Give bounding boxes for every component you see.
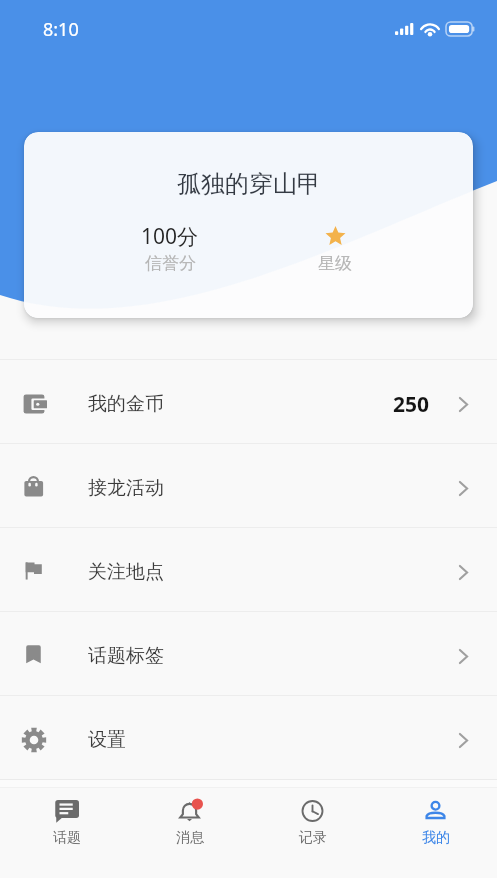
staticText: 孤独的穿山甲 [177, 169, 321, 199]
button[interactable]: 设置 [0, 696, 497, 779]
button[interactable]: 消息 [128, 788, 251, 847]
button[interactable]: 关注地点 [0, 528, 497, 611]
staticText: 我的 [422, 829, 450, 847]
staticText: 250 [393, 390, 430, 419]
button[interactable]: 记录 [251, 788, 374, 847]
button[interactable]: 话题标签 [0, 612, 497, 695]
staticText: 消息 [176, 829, 204, 847]
staticText: 100分 [141, 222, 199, 251]
staticText: 8:10 [43, 17, 79, 42]
button[interactable]: 我的 [374, 788, 497, 847]
staticText: 话题标签 [88, 644, 164, 668]
staticText: 接龙活动 [88, 476, 164, 500]
button[interactable]: 接龙活动 [0, 444, 497, 527]
staticText: 信誉分 [145, 253, 196, 274]
button[interactable]: 我的金币 [0, 360, 497, 443]
button[interactable]: 孤独的穿山甲 [24, 132, 473, 318]
staticText: 星级 [318, 253, 352, 274]
staticText: 记录 [299, 829, 327, 847]
staticText: 关注地点 [88, 560, 164, 584]
staticText: 我的金币 [88, 392, 164, 416]
button[interactable]: 话题 [5, 788, 128, 847]
staticText: 设置 [88, 728, 126, 752]
staticText: 话题 [53, 829, 81, 847]
